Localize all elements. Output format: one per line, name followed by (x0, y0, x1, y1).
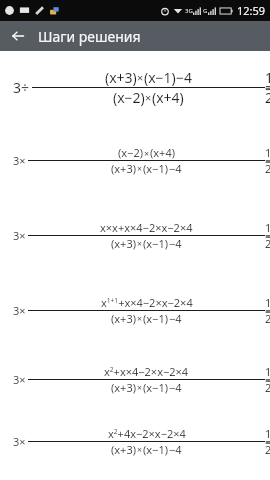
staticText: (x+3) (111, 161, 137, 176)
staticText: −4 (169, 161, 182, 176)
button[interactable]: 3× (0, 198, 270, 273)
staticText: × (145, 90, 152, 105)
staticText: × (137, 70, 144, 85)
staticText: Шаги решения (38, 27, 141, 46)
button[interactable]: Back (5, 23, 31, 49)
button[interactable]: 3÷ (0, 51, 270, 123)
staticText: x1+1+x×4−2×x−2×4 (101, 295, 193, 310)
staticText: −4 (176, 68, 193, 87)
staticText: (x+3) (111, 442, 137, 457)
staticText: (x−1) (143, 442, 169, 457)
staticText: −4 (169, 442, 182, 457)
staticText: × (137, 382, 143, 394)
staticText: (x−1) (144, 68, 176, 87)
staticText: −4 (169, 380, 182, 395)
staticText: (x+3) (111, 380, 137, 395)
staticText: × (137, 238, 143, 250)
staticText: 12:59 (237, 3, 266, 18)
staticText: (x−1) (143, 236, 169, 251)
staticText: 3÷ (13, 78, 30, 97)
staticText: 3× (13, 153, 26, 168)
staticText: 3× (13, 372, 26, 387)
staticText: (x−1) (143, 161, 169, 176)
staticText: −4 (169, 236, 182, 251)
staticText: × (137, 163, 143, 175)
staticText: (x+4) (150, 145, 176, 160)
staticText: x2+4x−2×x−2×4 (108, 426, 186, 441)
staticText: 3× (13, 228, 26, 243)
staticText: × (137, 444, 143, 456)
staticText: (x+3) (105, 68, 137, 87)
staticText: −4 (169, 311, 182, 326)
staticText: x×x+x×4−2×x−2×4 (100, 220, 193, 235)
staticText: × (144, 147, 150, 159)
staticText: (x−1) (143, 380, 169, 395)
staticText: x2+x×4−2×x−2×4 (104, 364, 189, 379)
staticText: 3× (13, 303, 26, 318)
button[interactable]: 3× (0, 273, 270, 348)
staticText: G (203, 7, 208, 15)
staticText: (x−1) (143, 311, 169, 326)
staticText: 3G (185, 7, 193, 15)
staticText: (x−2) (118, 145, 144, 160)
button[interactable]: 3× (0, 123, 270, 198)
staticText: (x+3) (111, 236, 137, 251)
staticText: (x−2) (113, 88, 145, 107)
button[interactable]: 3× (0, 348, 270, 410)
staticText: (x+3) (111, 311, 137, 326)
staticText: 3× (13, 434, 26, 449)
button[interactable]: 3× (0, 410, 270, 472)
staticText: × (137, 313, 143, 325)
staticText: (x+4) (152, 88, 184, 107)
